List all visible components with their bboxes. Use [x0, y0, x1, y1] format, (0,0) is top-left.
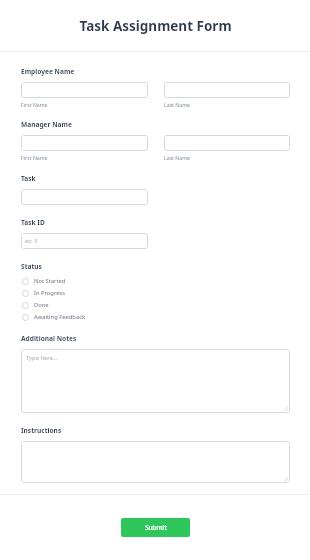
staticText: First Name [21, 101, 48, 108]
button[interactable]: Awaiting Feedback [21, 311, 86, 323]
button[interactable] [21, 135, 148, 151]
staticText: Submit [145, 523, 167, 532]
button[interactable] [164, 135, 290, 151]
staticText: Employee Name [21, 67, 75, 76]
staticText: Additional Notes [21, 334, 77, 343]
button[interactable] [21, 189, 148, 205]
staticText: Not Started [34, 277, 66, 285]
staticText: Instructions [21, 426, 62, 435]
button[interactable] [21, 82, 148, 98]
staticText: Task [21, 174, 36, 183]
staticText: Done [34, 301, 49, 309]
button[interactable] [164, 82, 290, 98]
button[interactable]: In Progress [21, 287, 66, 299]
staticText: First Name [21, 154, 48, 161]
staticText: Awaiting Feedback [34, 313, 86, 321]
staticText: In Progress [34, 289, 66, 297]
staticText: Task Assignment Form [79, 17, 232, 35]
staticText: Manager Name [21, 120, 72, 129]
button[interactable]: Type here... [21, 349, 290, 413]
staticText: Type here... [26, 354, 58, 362]
button[interactable]: ex: 3 [21, 233, 148, 249]
button[interactable]: Done [21, 299, 49, 311]
staticText: Task ID [21, 218, 45, 227]
button[interactable] [21, 441, 290, 483]
button[interactable]: Not Started [21, 275, 66, 287]
staticText: Last Name [164, 101, 190, 108]
staticText: Last Name [164, 154, 190, 161]
staticText: ex: 3 [25, 237, 38, 245]
staticText: Status [21, 262, 42, 271]
button[interactable]: Submit [121, 518, 190, 537]
